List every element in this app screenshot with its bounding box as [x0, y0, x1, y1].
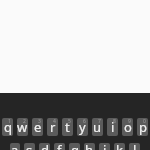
staticText: a — [11, 143, 19, 150]
staticText: i — [111, 118, 115, 136]
button[interactable]: r — [47, 118, 58, 136]
button[interactable]: k — [114, 143, 125, 150]
button[interactable]: i — [107, 118, 118, 136]
staticText: e — [34, 118, 42, 136]
button[interactable]: l — [129, 143, 140, 150]
button[interactable]: o — [122, 118, 133, 136]
staticText: 7 — [98, 118, 101, 125]
staticText: q — [4, 118, 12, 136]
button[interactable]: g — [69, 143, 80, 150]
staticText: w — [17, 118, 28, 136]
staticText: p — [139, 118, 147, 136]
staticText: r — [50, 118, 56, 136]
staticText: j — [103, 143, 107, 150]
staticText: 6 — [83, 118, 86, 125]
staticText: 3 — [38, 118, 41, 125]
staticText: 1 — [8, 118, 11, 125]
button[interactable]: j — [99, 143, 110, 150]
button[interactable]: a — [10, 143, 20, 150]
button[interactable]: q — [2, 118, 13, 136]
button[interactable]: t — [62, 118, 73, 136]
button[interactable]: d — [39, 143, 50, 150]
staticText: l — [133, 143, 137, 150]
button[interactable]: w — [17, 118, 28, 136]
staticText: d — [41, 143, 49, 150]
staticText: 2 — [23, 118, 26, 125]
button[interactable]: y — [77, 118, 88, 136]
staticText: 9 — [128, 118, 131, 125]
staticText: o — [124, 118, 132, 136]
staticText: y — [79, 118, 86, 136]
staticText: u — [93, 118, 102, 136]
staticText: h — [85, 143, 94, 150]
staticText: 5 — [68, 118, 71, 125]
staticText: f — [57, 143, 62, 150]
staticText: 4 — [53, 118, 56, 125]
staticText: t — [65, 118, 70, 136]
button[interactable]: h — [84, 143, 95, 150]
button[interactable]: e — [32, 118, 43, 136]
staticText: 8 — [113, 118, 116, 125]
staticText: 0 — [143, 118, 146, 125]
staticText: k — [116, 143, 123, 150]
button[interactable]: p — [137, 118, 148, 136]
staticText: s — [26, 143, 33, 150]
staticText: g — [71, 143, 79, 150]
button[interactable]: s — [24, 143, 35, 150]
button[interactable]: u — [92, 118, 103, 136]
button[interactable]: f — [54, 143, 65, 150]
